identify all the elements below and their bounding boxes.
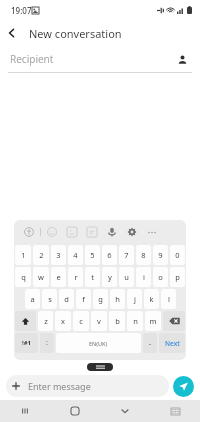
staticText: f [82, 294, 85, 304]
button[interactable]: Voice input [102, 221, 122, 243]
staticText: i [143, 272, 145, 282]
button[interactable]: h [110, 289, 125, 309]
button[interactable]: 0 [170, 245, 185, 265]
button[interactable]: 5 [85, 245, 100, 265]
button[interactable]: Keyboard layout [150, 400, 200, 422]
button[interactable]: d [59, 289, 74, 309]
button[interactable]: 6 [102, 245, 117, 265]
button[interactable]: Home [50, 400, 100, 422]
staticText: d [64, 294, 69, 304]
button[interactable]: x [55, 311, 71, 331]
button[interactable]: EN(UK) [56, 333, 141, 353]
staticText: : [46, 338, 48, 348]
button[interactable]: i [136, 267, 151, 287]
staticText: 4 [73, 250, 78, 260]
button[interactable]: l [161, 289, 176, 309]
staticText: EN(UK) [89, 340, 108, 347]
button[interactable]: s [42, 289, 57, 309]
staticText: t [91, 272, 94, 282]
button[interactable]: v [91, 311, 107, 331]
button[interactable]: k [144, 289, 159, 309]
button[interactable]: Add contact [174, 51, 190, 67]
button[interactable]: j [127, 289, 142, 309]
staticText: o [158, 272, 163, 282]
button[interactable]: Send [173, 376, 194, 397]
button[interactable]: m [145, 311, 161, 331]
staticText: r [74, 272, 78, 282]
button[interactable]: Resize keyboard [87, 363, 113, 371]
button[interactable]: q [15, 267, 31, 287]
staticText: 7 [124, 250, 129, 260]
button[interactable]: Add attachment [6, 375, 169, 397]
staticText: Recipient [10, 52, 174, 66]
button[interactable]: y [102, 267, 117, 287]
staticText: 9 [158, 250, 163, 260]
button[interactable]: 9 [153, 245, 168, 265]
button[interactable]: Backspace [163, 311, 185, 331]
staticText: . [149, 338, 151, 348]
staticText: a [30, 294, 35, 304]
staticText: g [98, 294, 103, 304]
staticText: q [21, 272, 26, 282]
button[interactable]: Shift [15, 311, 36, 331]
button[interactable]: b [109, 311, 125, 331]
staticText: c [79, 316, 83, 326]
staticText: 6 [107, 250, 112, 260]
button[interactable]: f [76, 289, 91, 309]
staticText: v [97, 316, 101, 326]
staticText: e [56, 272, 61, 282]
button[interactable]: w [33, 267, 49, 287]
button[interactable]: o [153, 267, 168, 287]
button[interactable]: g [93, 289, 108, 309]
staticText: Enter message [28, 380, 91, 392]
button[interactable]: !#1 [15, 333, 38, 353]
staticText: u [124, 272, 129, 282]
button[interactable]: Clipboard [82, 221, 102, 243]
staticText: s [48, 294, 52, 304]
staticText: p [175, 272, 180, 282]
button[interactable]: Translate [19, 221, 39, 243]
button[interactable]: Add attachment [6, 376, 26, 396]
button[interactable]: 7 [119, 245, 134, 265]
staticText: 0 [175, 250, 180, 260]
button[interactable]: a [25, 289, 40, 309]
staticText: 19:07 [11, 5, 32, 16]
staticText: 1 [21, 250, 26, 260]
button[interactable]: . [143, 333, 157, 353]
staticText: j [134, 294, 136, 304]
button[interactable]: z [38, 311, 53, 331]
button[interactable]: 1 [15, 245, 31, 265]
staticText: 3 [56, 250, 61, 260]
button[interactable]: Settings [122, 221, 142, 243]
staticText: w [38, 272, 44, 282]
button[interactable]: 8 [136, 245, 151, 265]
button[interactable]: Next [159, 333, 185, 353]
staticText: x [61, 316, 65, 326]
button[interactable]: More options [142, 221, 162, 243]
staticText: l [168, 294, 170, 304]
button[interactable]: : [40, 333, 54, 353]
staticText: m [149, 316, 157, 326]
button[interactable]: t [85, 267, 100, 287]
staticText: New conversation [29, 26, 122, 41]
staticText: Next [165, 339, 180, 348]
button[interactable]: Hide keyboard [100, 400, 150, 422]
button[interactable]: u [119, 267, 134, 287]
button[interactable]: Recents [0, 400, 50, 422]
button[interactable]: 3 [51, 245, 66, 265]
button[interactable]: r [68, 267, 83, 287]
button[interactable]: p [170, 267, 185, 287]
staticText: 8 [141, 250, 146, 260]
button[interactable]: 4 [68, 245, 83, 265]
staticText: z [44, 316, 48, 326]
staticText: !#1 [22, 339, 32, 347]
button[interactable]: Stickers [62, 221, 82, 243]
button[interactable]: e [51, 267, 66, 287]
button[interactable]: c [73, 311, 89, 331]
staticText: n [133, 316, 138, 326]
button[interactable]: n [127, 311, 143, 331]
button[interactable]: 2 [33, 245, 49, 265]
button[interactable]: Back [0, 21, 24, 45]
staticText: h [115, 294, 120, 304]
button[interactable]: Emoji [42, 221, 62, 243]
